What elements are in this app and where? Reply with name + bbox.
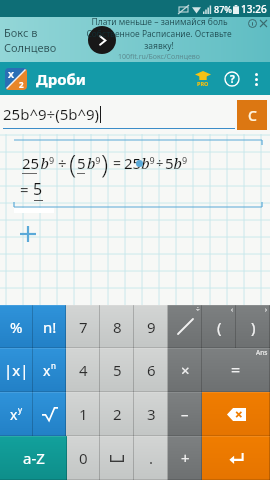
button[interactable]: Open advertisement	[88, 26, 116, 54]
button[interactable]: 9	[134, 305, 168, 348]
button[interactable]: C	[237, 100, 267, 130]
staticText: 25b9	[124, 153, 155, 173]
staticText: 6	[147, 360, 156, 380]
button[interactable]: ×	[168, 348, 202, 392]
button[interactable]: 25b^9÷(5b^9)	[3, 98, 235, 129]
staticText: ÷	[58, 153, 67, 173]
button[interactable]: More options	[245, 68, 267, 90]
button[interactable]: x	[0, 392, 33, 436]
staticText: =	[20, 179, 29, 199]
staticText: y	[18, 404, 23, 415]
staticText: Собственное Расписание. Оставьте	[86, 28, 232, 40]
staticText: n!	[43, 317, 57, 337]
staticText: 3	[147, 404, 156, 424]
button[interactable]: Enter	[202, 436, 270, 480]
staticText: n	[51, 360, 56, 371]
button[interactable]: .	[134, 436, 168, 480]
staticText: Бокс в	[4, 25, 38, 40]
button[interactable]: Close ad	[259, 19, 268, 28]
staticText: =	[231, 359, 241, 381]
button[interactable]: 6	[134, 348, 168, 392]
button[interactable]: Backspace	[202, 392, 270, 436]
staticText: 0	[79, 448, 88, 468]
staticText: 2	[113, 404, 122, 424]
staticText: ?	[230, 72, 235, 86]
button[interactable]: =	[202, 348, 270, 392]
button[interactable]: 3	[134, 392, 168, 436]
staticText: ×	[181, 360, 190, 380]
staticText: 87%	[214, 3, 232, 15]
button[interactable]: 4	[66, 348, 100, 392]
button[interactable]: Add new expression	[18, 224, 38, 244]
button[interactable]: Space	[100, 436, 134, 480]
staticText: 7	[79, 317, 88, 337]
staticText: x	[43, 361, 51, 380]
staticText: Дроби	[36, 69, 86, 89]
staticText: Ans	[256, 348, 268, 357]
staticText: 2	[19, 79, 24, 90]
button[interactable]: 0	[67, 436, 100, 480]
staticText: 100fit.ru/Бокс/Солнцево	[118, 52, 200, 61]
staticText: 5	[113, 360, 122, 380]
staticText: +	[181, 448, 190, 468]
staticText: =	[113, 153, 122, 172]
button[interactable]: 8	[100, 305, 134, 348]
staticText: C	[248, 106, 257, 125]
staticText: 5	[33, 178, 43, 200]
staticText: (	[69, 145, 77, 180]
button[interactable]: 5	[100, 348, 134, 392]
staticText: Плати меньше – занимайся боль	[91, 16, 228, 28]
staticText: %	[10, 317, 23, 337]
staticText: ÷	[156, 154, 164, 172]
button[interactable]: %	[0, 305, 33, 348]
staticText: 5b9	[165, 153, 188, 173]
staticText: a-Z	[23, 448, 45, 468]
staticText: x	[10, 405, 18, 424]
button[interactable]: X	[5, 68, 27, 90]
button[interactable]: Ad info	[248, 19, 257, 28]
staticText: ÷	[196, 305, 200, 314]
staticText: .	[149, 448, 154, 468]
button[interactable]: Square root	[33, 392, 66, 436]
staticText: Солнцево	[4, 40, 57, 55]
button[interactable]: (	[202, 305, 236, 348]
staticText: 4	[79, 360, 88, 380]
staticText: 25b^9÷(5b^9)	[3, 104, 100, 124]
button[interactable]: n!	[33, 305, 66, 348]
staticText: X	[8, 68, 15, 80]
staticText: –	[181, 404, 189, 424]
staticText: PRO	[197, 80, 209, 87]
button[interactable]: Upgrade to PRO	[189, 65, 216, 92]
button[interactable]: 1	[66, 392, 100, 436]
staticText: 5 b9	[77, 153, 101, 173]
button[interactable]: Бокс в	[0, 17, 270, 62]
button[interactable]: a-Z	[0, 436, 67, 480]
button[interactable]: 7	[66, 305, 100, 348]
staticText: заявку!	[144, 40, 174, 52]
button[interactable]: Help	[219, 66, 245, 92]
button[interactable]: +	[168, 436, 202, 480]
button[interactable]: )	[236, 305, 270, 348]
button[interactable]: |x|	[0, 348, 33, 392]
button[interactable]: –	[168, 392, 202, 436]
staticText: 13:26	[241, 2, 267, 16]
staticText: )	[101, 145, 109, 180]
button[interactable]: x	[33, 348, 66, 392]
staticText: |x|	[4, 360, 29, 380]
staticText: ›	[265, 305, 268, 314]
staticText: ‹	[231, 305, 234, 314]
staticText: 25 b9	[22, 153, 55, 173]
staticText: )	[251, 317, 256, 337]
staticText: 8	[113, 317, 122, 337]
button[interactable]: Divide	[168, 305, 202, 348]
staticText: (	[217, 317, 222, 337]
staticText: 1	[79, 404, 88, 424]
button[interactable]: 2	[100, 392, 134, 436]
staticText: 9	[147, 317, 156, 337]
